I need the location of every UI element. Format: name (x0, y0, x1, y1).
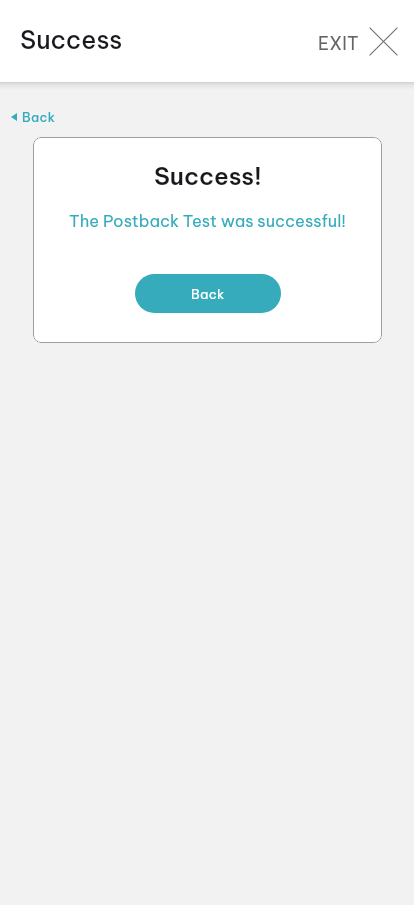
staticText: Success! (154, 161, 262, 192)
staticText: EXIT (318, 32, 359, 55)
staticText: Success (20, 24, 123, 56)
button[interactable]: Back (135, 274, 281, 313)
other: Close (365, 23, 402, 60)
staticText: Back (22, 109, 56, 125)
button[interactable]: EXIT (314, 17, 406, 66)
staticText: Back (191, 286, 225, 302)
button[interactable]: Back (9, 106, 58, 128)
staticText: The Postback Test was successful! (69, 211, 346, 232)
